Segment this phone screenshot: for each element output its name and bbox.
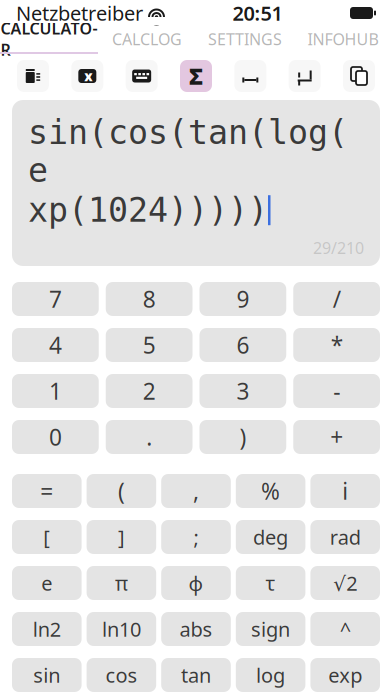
- button[interactable]: tan: [161, 658, 231, 692]
- button[interactable]: sin: [12, 658, 82, 692]
- staticText: √2: [333, 570, 357, 596]
- staticText: sin(cos(tan(log(e: [28, 114, 348, 189]
- button[interactable]: [: [12, 520, 82, 554]
- staticText: Netzbetreiber: [16, 0, 143, 26]
- button[interactable]: Functions: [180, 60, 212, 92]
- button[interactable]: 0: [12, 420, 99, 454]
- staticText: -: [333, 376, 340, 406]
- button[interactable]: ;: [161, 520, 231, 554]
- button[interactable]: Keyboard: [126, 60, 158, 92]
- staticText: CALCLOG: [112, 28, 182, 50]
- button[interactable]: 7: [12, 282, 99, 316]
- button[interactable]: abs: [161, 612, 231, 646]
- staticText: 0: [49, 422, 62, 452]
- staticText: =: [40, 476, 53, 506]
- button[interactable]: Clear all: [17, 60, 49, 92]
- button[interactable]: ln2: [12, 612, 82, 646]
- staticText: /: [333, 284, 341, 314]
- button[interactable]: cos: [87, 658, 156, 692]
- button[interactable]: *: [293, 328, 380, 362]
- staticText: abs: [179, 616, 212, 642]
- staticText: .: [146, 422, 152, 452]
- button[interactable]: 1: [12, 374, 99, 408]
- staticText: 4: [49, 330, 62, 360]
- button[interactable]: 4: [12, 328, 99, 362]
- staticText: cos: [105, 662, 137, 688]
- button[interactable]: ): [199, 420, 286, 454]
- button[interactable]: Copy: [343, 60, 375, 92]
- staticText: 3: [236, 376, 249, 406]
- staticText: π: [115, 570, 128, 596]
- button[interactable]: ln10: [87, 612, 156, 646]
- button[interactable]: 2: [106, 374, 193, 408]
- button[interactable]: log: [236, 658, 305, 692]
- button[interactable]: ]: [87, 520, 156, 554]
- staticText: CALCULATOR: [0, 18, 97, 60]
- staticText: ;: [193, 524, 198, 550]
- staticText: x: [84, 67, 92, 85]
- staticText: rad: [330, 524, 361, 550]
- button[interactable]: +: [293, 420, 380, 454]
- button[interactable]: ,: [161, 474, 231, 508]
- button[interactable]: (: [87, 474, 156, 508]
- staticText: *: [331, 330, 343, 360]
- button[interactable]: sign: [236, 612, 305, 646]
- button[interactable]: =: [12, 474, 82, 508]
- staticText: 1: [49, 376, 62, 406]
- staticText: 5: [143, 330, 156, 360]
- button[interactable]: 6: [199, 328, 286, 362]
- button[interactable]: τ: [236, 566, 305, 600]
- staticText: [: [43, 524, 50, 550]
- button[interactable]: rad: [310, 520, 380, 554]
- staticText: (: [118, 476, 125, 506]
- button[interactable]: deg: [236, 520, 305, 554]
- button[interactable]: i: [310, 474, 380, 508]
- button[interactable]: Return: [289, 60, 321, 92]
- staticText: xp(1024))))): [28, 191, 268, 229]
- button[interactable]: 5: [106, 328, 193, 362]
- button[interactable]: SETTINGS: [196, 26, 294, 52]
- button[interactable]: -: [293, 374, 380, 408]
- button[interactable]: .: [106, 420, 193, 454]
- button[interactable]: Delete: [71, 60, 103, 92]
- button[interactable]: /: [293, 282, 380, 316]
- button[interactable]: π: [87, 566, 156, 600]
- button[interactable]: 8: [106, 282, 193, 316]
- staticText: ): [239, 422, 246, 452]
- staticText: ]: [118, 524, 125, 550]
- button[interactable]: ^: [310, 612, 380, 646]
- staticText: SETTINGS: [208, 28, 282, 50]
- staticText: tan: [181, 662, 211, 688]
- staticText: %: [261, 476, 280, 506]
- button[interactable]: INFOHUB: [294, 26, 392, 52]
- button[interactable]: %: [236, 474, 305, 508]
- button[interactable]: 9: [199, 282, 286, 316]
- staticText: ϕ: [188, 570, 203, 596]
- staticText: 2: [143, 376, 156, 406]
- staticText: ln2: [33, 616, 61, 642]
- button[interactable]: exp: [310, 658, 380, 692]
- button[interactable]: Space: [234, 60, 266, 92]
- button[interactable]: CALCLOG: [98, 26, 196, 52]
- button[interactable]: ϕ: [161, 566, 231, 600]
- staticText: 20:51: [232, 0, 282, 26]
- staticText: deg: [253, 524, 288, 550]
- button[interactable]: CALCULATOR: [0, 26, 98, 52]
- staticText: 29/210: [313, 237, 364, 258]
- staticText: τ: [266, 570, 276, 596]
- button[interactable]: e: [12, 566, 82, 600]
- button[interactable]: √2: [310, 566, 380, 600]
- staticText: +: [330, 422, 343, 452]
- staticText: ,: [193, 476, 199, 506]
- staticText: i: [342, 476, 348, 506]
- staticText: 6: [236, 330, 249, 360]
- staticText: sin: [33, 662, 60, 688]
- staticText: exp: [328, 662, 362, 688]
- staticText: log: [256, 662, 285, 688]
- staticText: 9: [236, 284, 249, 314]
- staticText: ln10: [102, 616, 141, 642]
- staticText: 8: [143, 284, 156, 314]
- button[interactable]: 3: [199, 374, 286, 408]
- staticText: Σ: [189, 61, 203, 91]
- staticText: ^: [340, 616, 351, 642]
